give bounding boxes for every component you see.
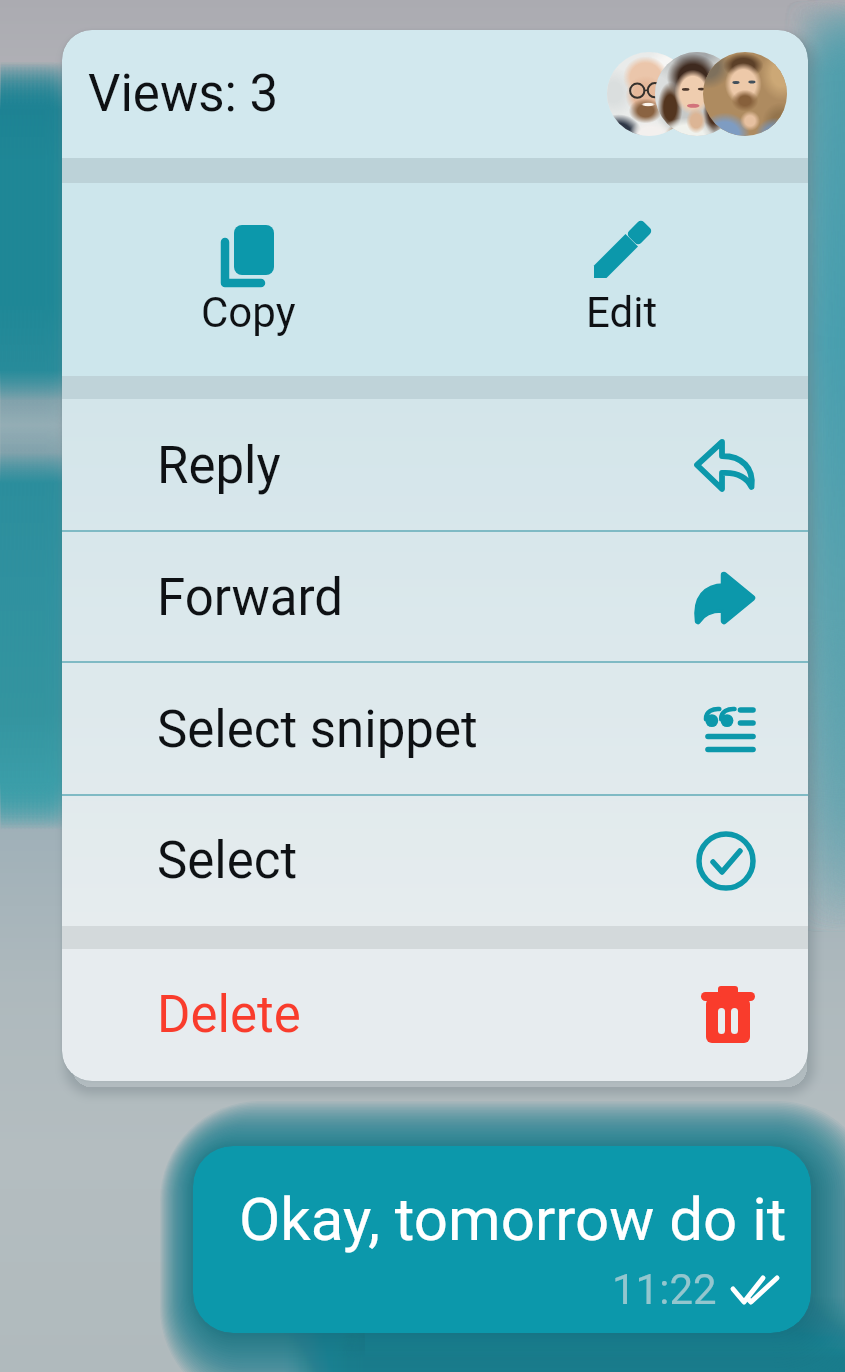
- staticText: Reply: [157, 436, 281, 496]
- staticText: Edit: [586, 288, 658, 337]
- staticText: Forward: [157, 568, 344, 628]
- other: Edit: [594, 222, 650, 278]
- button[interactable]: Views: 3: [62, 30, 808, 158]
- other: Copy: [220, 222, 278, 288]
- button[interactable]: Forward: [62, 532, 808, 663]
- button[interactable]: Reply: [62, 399, 808, 532]
- staticText: Select: [157, 831, 298, 891]
- other: Select snippet: [705, 707, 756, 752]
- other: Delete: [700, 985, 756, 1045]
- button[interactable]: Delete: [62, 949, 808, 1081]
- button[interactable]: Select: [62, 796, 808, 926]
- staticText: Select snippet: [157, 700, 478, 760]
- staticText: Okay, tomorrow do it: [239, 1184, 787, 1254]
- staticText: Delete: [157, 985, 301, 1045]
- other: Reply: [694, 439, 756, 492]
- other: Select: [696, 831, 756, 891]
- button[interactable]: Select snippet: [62, 663, 808, 796]
- other: Forward: [693, 571, 756, 625]
- button[interactable]: Copy: [62, 183, 435, 337]
- staticText: 11:22: [612, 1265, 717, 1314]
- button[interactable]: Edit: [435, 183, 808, 337]
- staticText: Copy: [201, 288, 296, 337]
- other: Read: [730, 1275, 780, 1305]
- button[interactable]: Okay, tomorrow do it: [193, 1146, 811, 1333]
- staticText: Views: 3: [88, 64, 279, 124]
